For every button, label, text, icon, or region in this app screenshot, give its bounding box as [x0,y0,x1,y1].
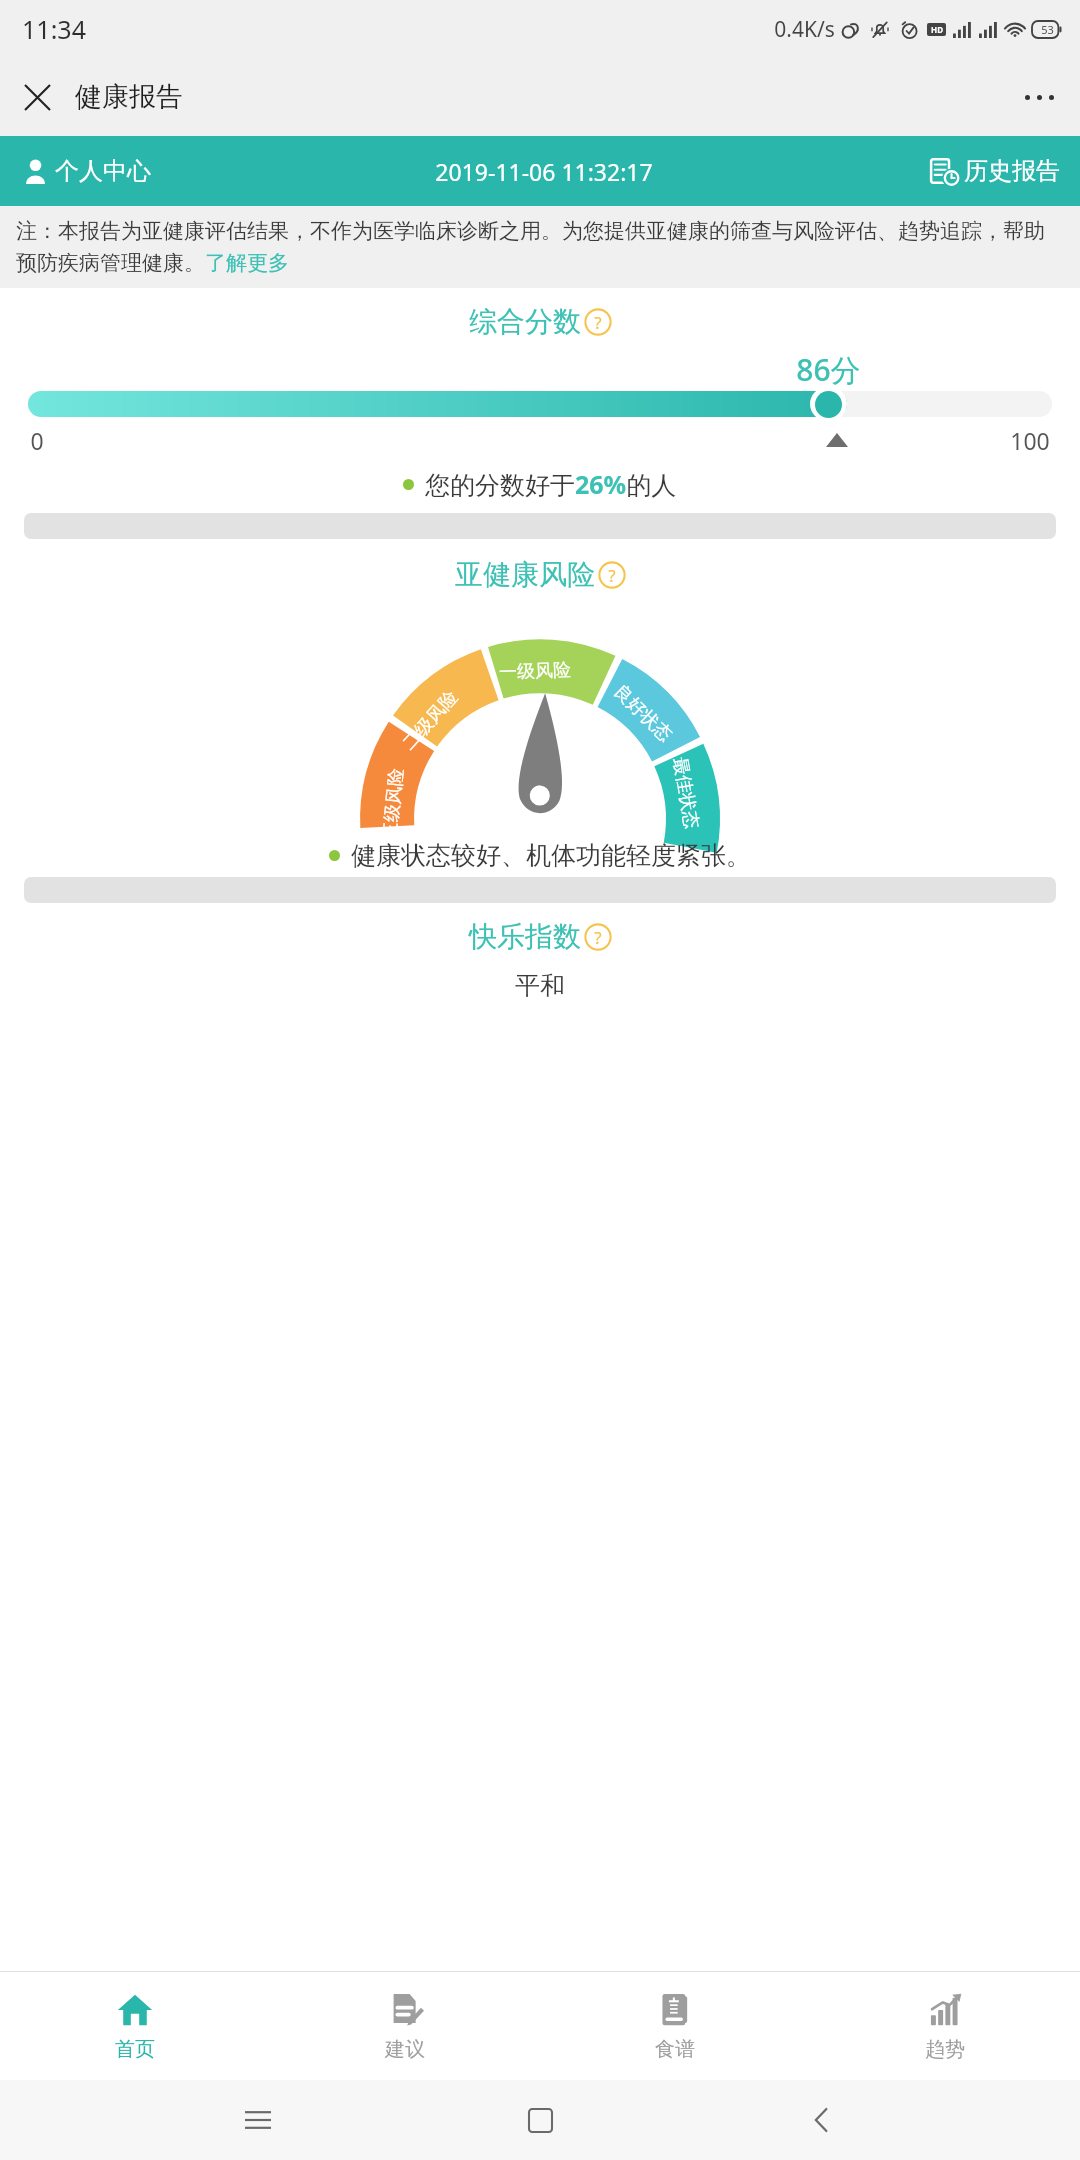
staticText: 86分 [796,349,861,385]
staticText: 健康状态较好、机体功能轻度紧张。 [351,840,751,871]
staticText: 建议 [385,2037,425,2062]
staticText: ? [608,564,616,587]
staticText: 11:34 [22,12,86,46]
staticText: 历史报告 [964,156,1060,186]
staticText: ? [594,926,602,949]
staticText: 您的分数好于26%的人 [425,467,677,501]
button[interactable]: Recent apps [234,2096,282,2144]
button[interactable]: 个人中心 [22,156,151,186]
button[interactable]: 趋势 [810,1972,1080,2080]
staticText: 良好状态 [609,680,677,747]
staticText: 二级风险 [398,686,463,755]
staticText: 平和 [515,970,565,1001]
staticText: 亚健康风险 [455,557,595,592]
staticText: 2019-11-06 11:32:17 [435,156,653,187]
staticText: ? [594,311,602,334]
staticText: 快乐指数 [469,919,581,954]
button[interactable]: 综合分数 [0,304,1080,339]
button[interactable]: 建议 [270,1972,540,2080]
staticText: 100 [1010,425,1050,456]
staticText: 53 [1041,22,1054,37]
button[interactable]: Back [798,2096,846,2144]
button[interactable]: 快乐指数 [0,919,1080,954]
button[interactable]: 亚健康风险 [0,557,1080,592]
staticText: 首页 [115,2037,155,2062]
staticText: 个人中心 [55,156,151,186]
button[interactable]: Home [516,2096,564,2144]
button[interactable]: 首页 [0,1972,270,2080]
staticText: 健康报告 [75,80,183,114]
staticText: 0.4K/s [774,15,835,44]
staticText: 三级风险 [378,767,409,841]
staticText: 综合分数 [469,304,581,339]
staticText: 趋势 [925,2037,965,2062]
button[interactable]: 历史报告 [930,156,1060,186]
staticText: HD [931,24,943,35]
staticText: 一级风险 [499,659,571,684]
staticText: 注：本报告为亚健康评估结果，不作为医学临床诊断之用。为您提供亚健康的筛查与风险评… [16,218,1064,276]
staticText: 食谱 [655,2037,695,2062]
button[interactable]: More options [1014,72,1064,122]
button[interactable]: 食谱 [540,1972,810,2080]
staticText: 0 [30,425,44,456]
staticText: 最佳状态 [668,756,703,830]
button[interactable]: Close [12,72,62,122]
